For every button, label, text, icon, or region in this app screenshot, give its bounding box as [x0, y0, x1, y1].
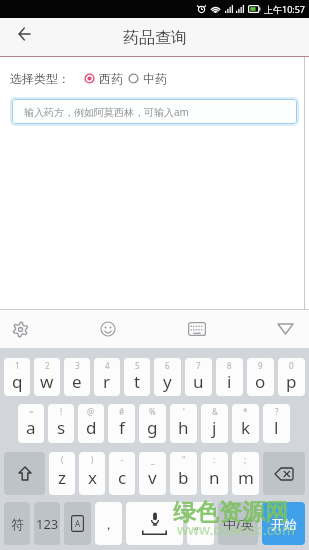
staticText: www.downcc.com [177, 520, 296, 539]
button[interactable]: 输入药方，例如阿莫西林，可输入am [12, 99, 297, 124]
staticText: x [88, 466, 97, 489]
button[interactable]: ' [170, 404, 197, 443]
staticText: _ [151, 454, 155, 465]
staticText: c [118, 466, 127, 489]
button[interactable]: 6 [154, 358, 181, 396]
staticText: v [148, 466, 157, 489]
button[interactable]: ~ [18, 404, 44, 443]
button[interactable]: ( [49, 452, 75, 495]
button[interactable]: 5 [124, 358, 150, 396]
button[interactable]: 1 [4, 358, 30, 396]
button[interactable]: % [139, 404, 166, 443]
button[interactable]: Input language [64, 502, 91, 545]
button[interactable]: _ [139, 452, 166, 495]
staticText: * [243, 406, 248, 417]
staticText: h [178, 416, 189, 439]
staticText: w [40, 370, 54, 393]
staticText: & [212, 406, 218, 417]
staticText: 5 [135, 360, 140, 371]
staticText: t [134, 370, 141, 393]
button[interactable]: : [201, 452, 228, 495]
button[interactable]: Hide keyboard [270, 310, 300, 348]
staticText: y [163, 370, 172, 393]
staticText: 西药 [99, 71, 123, 86]
staticText: - [121, 454, 124, 465]
button[interactable]: Emoji [93, 310, 123, 348]
button[interactable]: Settings [5, 310, 35, 348]
button[interactable]: Shift [4, 452, 45, 495]
button[interactable]: Backspace [263, 452, 305, 495]
staticText: f [119, 416, 125, 439]
staticText: 上午10:57 [264, 3, 306, 15]
button[interactable]: ) [79, 452, 105, 495]
staticText: m [238, 466, 254, 489]
staticText: ' [183, 406, 185, 417]
button[interactable]: # [108, 404, 135, 443]
staticText: 9 [258, 360, 263, 371]
staticText: 绿色资源网 [173, 498, 288, 527]
staticText: q [12, 370, 23, 393]
staticText: ? [275, 406, 279, 417]
staticText: 7 [196, 360, 201, 371]
button[interactable]: ! [48, 404, 74, 443]
button[interactable]: 中/英 [218, 502, 258, 545]
staticText: 0 [289, 360, 294, 371]
staticText: 输入药方，例如阿莫西林，可输入am [24, 105, 189, 119]
button[interactable]: Keyboard layout [182, 310, 212, 348]
button[interactable]: 符 [4, 502, 30, 545]
staticText: r [103, 370, 111, 393]
button[interactable]: 123 [34, 502, 60, 545]
staticText: # [119, 406, 125, 417]
staticText: i [227, 370, 232, 393]
staticText: 选择类型： [10, 71, 70, 86]
button[interactable]: @ [78, 404, 104, 443]
button[interactable]: 4 [94, 358, 120, 396]
staticText: 8 [227, 360, 232, 371]
staticText: s [57, 416, 66, 439]
staticText: j [212, 416, 217, 439]
button[interactable]: 开始 [262, 502, 305, 545]
staticText: 中/英 [223, 515, 254, 533]
staticText: k [241, 416, 251, 439]
staticText: 符 [11, 516, 24, 532]
staticText: b [178, 466, 189, 489]
button[interactable]: 西药 [84, 71, 123, 86]
staticText: o [255, 370, 266, 393]
button[interactable]: ; [232, 452, 259, 495]
staticText: 1 [15, 360, 20, 371]
button[interactable]: 8 [216, 358, 243, 396]
button[interactable]: ， [95, 502, 122, 545]
button[interactable]: " [170, 452, 197, 495]
button[interactable]: Space [126, 502, 183, 545]
button[interactable]: 中药 [128, 71, 167, 86]
staticText: 开始 [271, 516, 297, 532]
staticText: ( [61, 454, 64, 465]
button[interactable]: 2 [34, 358, 60, 396]
button[interactable]: Back [9, 19, 39, 49]
staticText: g [147, 416, 158, 439]
staticText: @ [87, 406, 95, 417]
staticText: n [209, 466, 220, 489]
button[interactable]: 9 [247, 358, 274, 396]
staticText: 3 [75, 360, 80, 371]
button[interactable]: * [232, 404, 259, 443]
button[interactable]: - [109, 452, 135, 495]
button[interactable]: & [201, 404, 228, 443]
staticText: u [193, 370, 204, 393]
staticText: 123 [36, 515, 59, 533]
staticText: : [213, 454, 216, 465]
staticText: A [75, 518, 81, 529]
staticText: ! [60, 406, 63, 417]
staticText: d [86, 416, 97, 439]
staticText: 6 [165, 360, 170, 371]
staticText: 。 [194, 516, 207, 532]
button[interactable]: ? [263, 404, 290, 443]
button[interactable]: 3 [64, 358, 90, 396]
staticText: 中药 [143, 71, 167, 86]
button[interactable]: 7 [185, 358, 212, 396]
staticText: " [182, 454, 186, 465]
button[interactable]: 。 [187, 502, 214, 545]
button[interactable]: 0 [278, 358, 305, 396]
staticText: ~ [29, 406, 34, 417]
staticText: ) [91, 454, 94, 465]
